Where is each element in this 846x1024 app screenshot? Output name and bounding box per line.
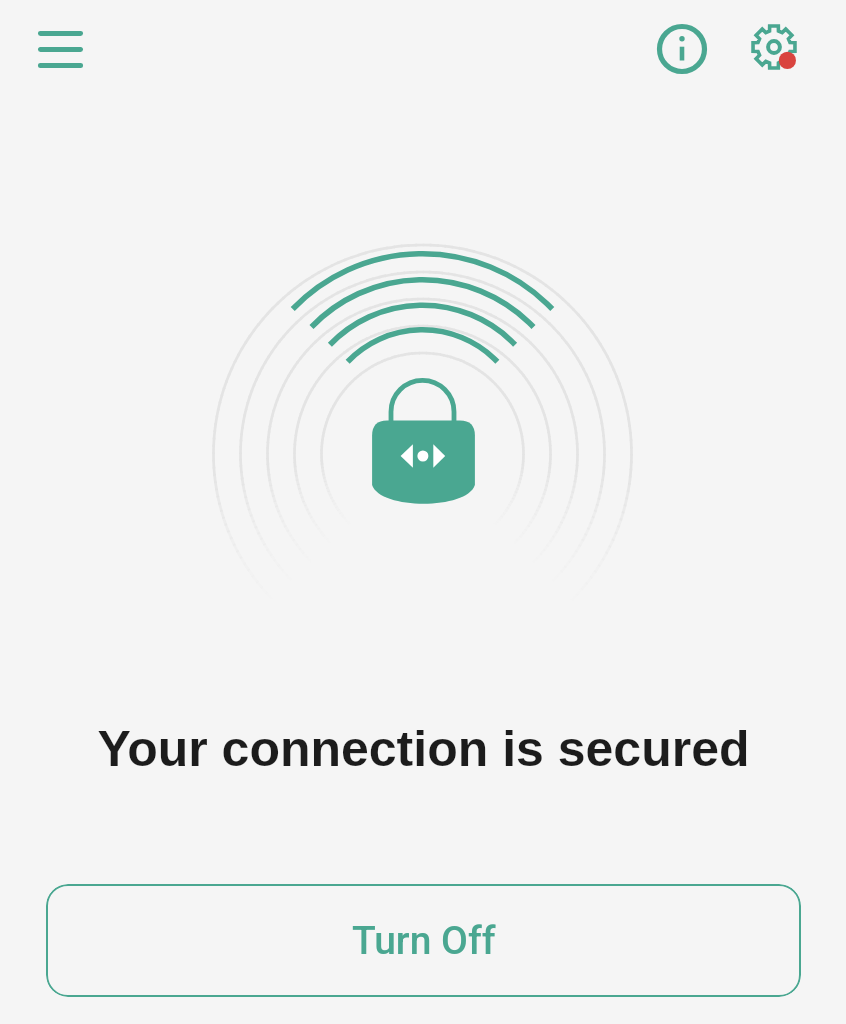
button[interactable]: Turn Off bbox=[46, 884, 801, 997]
button[interactable]: Settings bbox=[736, 9, 812, 85]
staticText: Turn Off bbox=[352, 918, 496, 964]
button[interactable]: Menu bbox=[22, 11, 99, 88]
button[interactable]: Information bbox=[644, 11, 720, 87]
staticText: Your connection is secured bbox=[97, 721, 750, 777]
